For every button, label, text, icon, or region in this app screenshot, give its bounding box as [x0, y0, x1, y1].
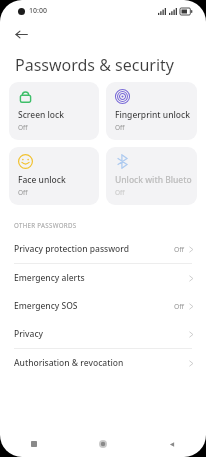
button[interactable]: Face unlock [9, 147, 99, 205]
staticText: Off [18, 188, 28, 197]
staticText: Privacy protection password [14, 243, 174, 255]
staticText: 10:00 [29, 6, 47, 16]
button[interactable]: Privacy protection password [0, 235, 206, 263]
staticText: Unlock with Bluetooth [115, 174, 192, 186]
staticText: Emergency SOS [14, 300, 174, 312]
button[interactable]: Back [137, 431, 206, 457]
staticText: Off [174, 245, 184, 254]
button[interactable]: Authorisation & revocation [0, 349, 206, 377]
button[interactable]: Recent apps [0, 431, 68, 457]
staticText: Passwords & security [15, 54, 174, 76]
button[interactable]: Fingerprint unlock [106, 82, 197, 140]
staticText: Off [174, 302, 184, 311]
staticText: Emergency alerts [14, 272, 189, 284]
button[interactable]: Back [9, 22, 33, 46]
staticText: Off [18, 123, 28, 132]
staticText: Off [115, 188, 125, 197]
button[interactable]: Privacy [0, 320, 206, 348]
staticText: Authorisation & revocation [14, 357, 189, 369]
staticText: OTHER PASSWORDS [14, 221, 77, 229]
button[interactable]: Emergency SOS [0, 292, 206, 320]
staticText: Fingerprint unlock [115, 109, 190, 121]
button[interactable]: Unlock with Bluetooth [106, 147, 197, 205]
button[interactable]: Screen lock [9, 82, 99, 140]
button[interactable]: Emergency alerts [0, 264, 206, 292]
staticText: Privacy [14, 328, 189, 340]
staticText: Face unlock [18, 174, 66, 186]
button[interactable]: Home [68, 431, 137, 457]
staticText: Off [115, 123, 125, 132]
staticText: Screen lock [18, 109, 64, 121]
